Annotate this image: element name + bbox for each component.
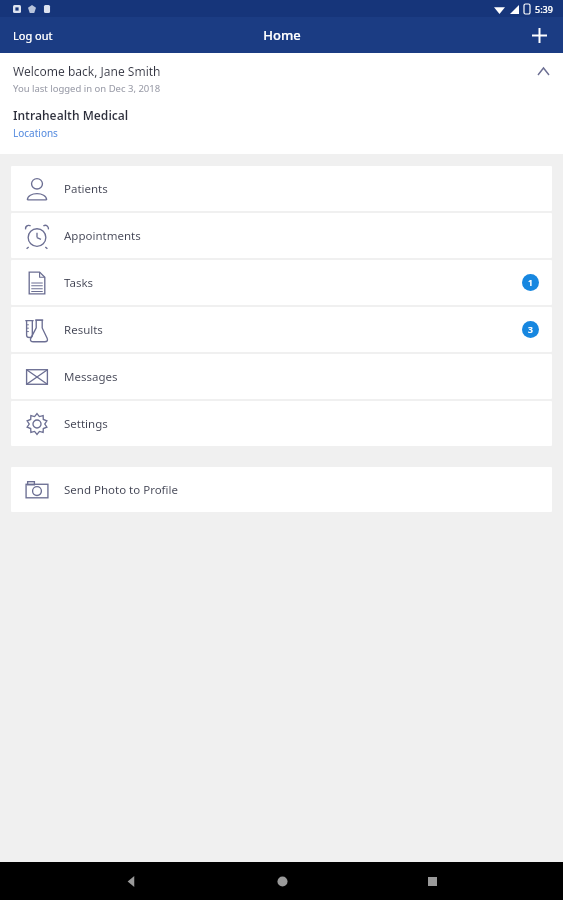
staticText: 5:39 [535, 3, 553, 15]
button[interactable]: Back [112, 862, 150, 900]
button[interactable]: Home [263, 862, 301, 900]
button[interactable]: Patients [11, 166, 552, 211]
staticText: Home [263, 26, 301, 44]
staticText: Patients [64, 181, 108, 197]
button[interactable]: Collapse [533, 53, 563, 81]
button[interactable]: Locations [13, 126, 58, 140]
button[interactable]: Add [515, 23, 563, 47]
staticText: Results [64, 322, 103, 338]
button[interactable]: Appointments [11, 213, 552, 258]
staticText: 1 [528, 277, 533, 289]
button[interactable]: Messages [11, 354, 552, 399]
button[interactable]: Send Photo to Profile [11, 467, 552, 512]
button[interactable]: Log out [0, 20, 66, 51]
staticText: Locations [13, 126, 58, 140]
staticText: Tasks [64, 275, 94, 291]
staticText: Log out [13, 28, 53, 43]
staticText: Welcome back, Jane Smith [13, 63, 161, 79]
button[interactable]: Recents [413, 862, 451, 900]
staticText: Appointments [64, 228, 141, 244]
button[interactable]: Tasks [11, 260, 552, 305]
staticText: 3 [528, 324, 533, 336]
button[interactable]: Settings [11, 401, 552, 446]
staticText: Send Photo to Profile [64, 482, 178, 498]
staticText: You last logged in on Dec 3, 2018 [13, 82, 161, 95]
staticText: Intrahealth Medical [13, 107, 129, 123]
button[interactable]: Results [11, 307, 552, 352]
staticText: Settings [64, 416, 108, 432]
staticText: Messages [64, 369, 118, 385]
